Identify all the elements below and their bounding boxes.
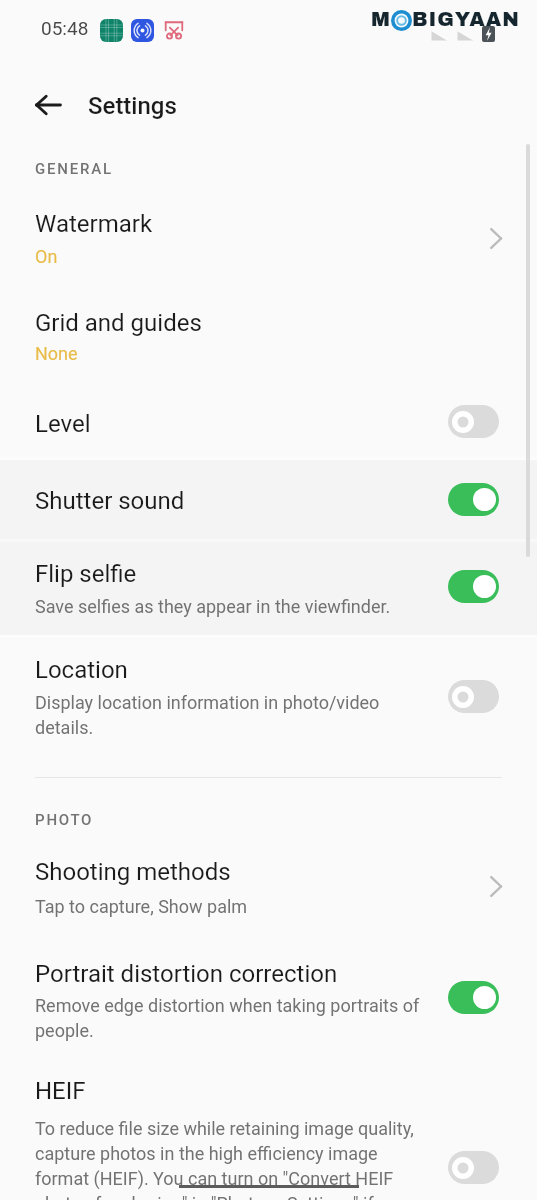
- button[interactable]: [0, 539, 537, 635]
- staticText: PHOTO: [35, 811, 94, 829]
- staticText: Save selfies as they appear in the viewf…: [35, 596, 391, 617]
- staticText: Location: [35, 656, 128, 684]
- button[interactable]: Open: [478, 868, 514, 904]
- staticText: Remove edge distortion when taking portr…: [35, 995, 427, 1041]
- staticText: BIGYAAN: [412, 8, 520, 30]
- button[interactable]: [0, 292, 537, 380]
- button[interactable]: [0, 1061, 537, 1200]
- button[interactable]: [0, 636, 537, 761]
- staticText: Shutter sound: [35, 487, 185, 515]
- button[interactable]: [0, 192, 537, 282]
- button[interactable]: [0, 943, 537, 1061]
- button[interactable]: Back: [26, 83, 70, 127]
- staticText: Level: [35, 410, 91, 438]
- staticText: Shooting methods: [35, 858, 231, 886]
- staticText: On: [35, 246, 58, 267]
- button[interactable]: [0, 392, 537, 460]
- button[interactable]: Toggle on: [448, 570, 499, 603]
- staticText: Flip selfie: [35, 560, 137, 588]
- button[interactable]: Toggle on: [448, 981, 499, 1014]
- button[interactable]: [0, 461, 537, 538]
- button[interactable]: [0, 843, 537, 933]
- staticText: To reduce file size while retaining imag…: [35, 1118, 427, 1200]
- button[interactable]: Toggle off: [448, 680, 499, 713]
- staticText: 05:48: [41, 17, 89, 39]
- button[interactable]: Open: [478, 220, 514, 256]
- staticText: HEIF: [35, 1077, 86, 1105]
- staticText: Watermark: [35, 210, 153, 238]
- staticText: Settings: [88, 92, 177, 120]
- staticText: Display location information in photo/vi…: [35, 692, 395, 738]
- button[interactable]: Toggle on: [448, 483, 499, 516]
- staticText: GENERAL: [35, 160, 113, 178]
- staticText: Tap to capture, Show palm: [35, 896, 248, 917]
- staticText: M: [371, 8, 390, 30]
- staticText: Portrait distortion correction: [35, 960, 338, 988]
- button[interactable]: Toggle off: [448, 1151, 499, 1184]
- staticText: Grid and guides: [35, 309, 202, 337]
- button[interactable]: Settings: [80, 86, 240, 134]
- button[interactable]: Toggle off: [448, 405, 499, 438]
- staticText: None: [35, 343, 78, 364]
